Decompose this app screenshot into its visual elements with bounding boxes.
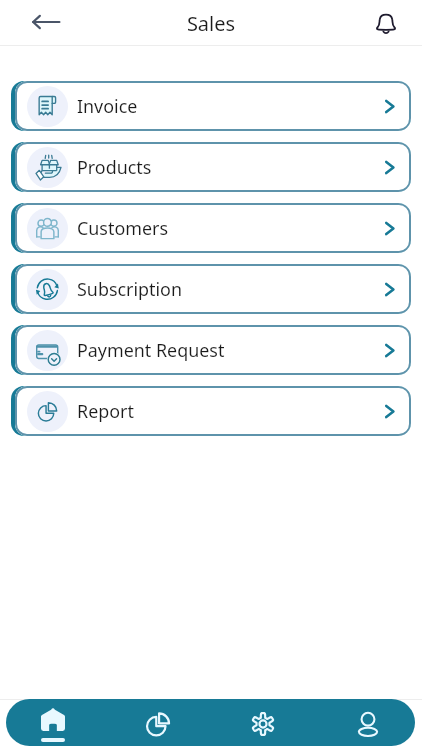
- button[interactable]: Profile: [343, 699, 393, 746]
- button[interactable]: Settings: [238, 699, 288, 746]
- staticText: Subscription: [77, 277, 183, 301]
- staticText: Sales: [0, 10, 422, 37]
- button[interactable]: Products: [11, 142, 411, 192]
- staticText: Payment Request: [77, 338, 225, 362]
- staticText: Invoice: [77, 94, 138, 118]
- staticText: Report: [77, 399, 134, 423]
- button[interactable]: Analytics: [133, 699, 183, 746]
- button[interactable]: Home: [28, 699, 78, 746]
- button[interactable]: Back: [28, 4, 64, 40]
- staticText: Products: [77, 155, 152, 179]
- button[interactable]: Report: [11, 386, 411, 436]
- button[interactable]: Customers: [11, 203, 411, 253]
- staticText: Customers: [77, 216, 168, 240]
- button[interactable]: Payment Request: [11, 325, 411, 375]
- button[interactable]: Invoice: [11, 81, 411, 131]
- button[interactable]: Subscription: [11, 264, 411, 314]
- button[interactable]: Notifications: [368, 4, 404, 40]
